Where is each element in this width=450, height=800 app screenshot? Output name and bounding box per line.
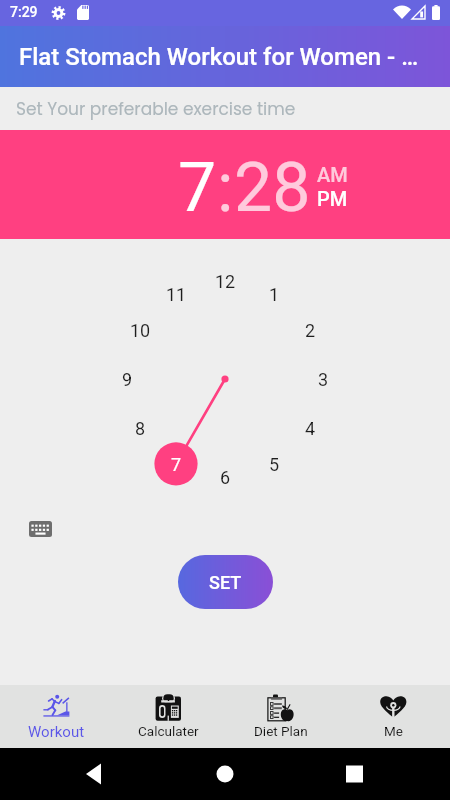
- staticText: 8: [135, 418, 146, 439]
- staticText: 3: [318, 369, 329, 390]
- staticText: SET: [209, 572, 242, 593]
- staticText: Set Your preferable exercise time: [16, 97, 296, 121]
- staticText: 10: [130, 320, 151, 341]
- staticText: 9: [122, 369, 133, 390]
- button[interactable]: 9: [107, 359, 147, 399]
- staticText: Me: [384, 723, 403, 739]
- button[interactable]: 7: [178, 148, 217, 228]
- staticText: Calculater: [138, 723, 199, 739]
- staticText: 1: [269, 284, 280, 305]
- staticText: 4: [305, 418, 316, 439]
- button[interactable]: SET: [178, 555, 273, 609]
- staticText: 5: [269, 454, 280, 475]
- staticText: 6: [220, 467, 231, 488]
- button[interactable]: 4: [290, 408, 330, 448]
- button[interactable]: 1: [254, 274, 294, 314]
- button[interactable]: 8: [120, 408, 160, 448]
- staticText: Diet Plan: [254, 723, 308, 739]
- button[interactable]: Workout: [0, 685, 112, 748]
- staticText: 7:29: [10, 4, 38, 20]
- button[interactable]: 6: [205, 457, 245, 497]
- button[interactable]: 5: [254, 444, 294, 484]
- button[interactable]: PM: [317, 187, 348, 210]
- staticText: 7: [171, 454, 182, 475]
- button[interactable]: 2: [290, 310, 330, 350]
- staticText: :: [217, 148, 234, 228]
- staticText: 12: [215, 271, 236, 292]
- button[interactable]: Me: [337, 685, 450, 748]
- button[interactable]: 28: [234, 148, 311, 228]
- button[interactable]: Switch to keyboard input: [22, 511, 58, 547]
- staticText: 2: [305, 320, 316, 341]
- staticText: Flat Stomach Workout for Women - Burn Be…: [19, 43, 433, 71]
- button[interactable]: 10: [120, 310, 160, 350]
- button[interactable]: 12: [205, 261, 245, 301]
- button[interactable]: Calculater: [112, 685, 224, 748]
- button[interactable]: 7: [156, 444, 196, 484]
- staticText: 11: [166, 284, 187, 305]
- button[interactable]: Diet Plan: [224, 685, 337, 748]
- button[interactable]: AM: [317, 163, 348, 186]
- button[interactable]: 3: [303, 359, 343, 399]
- button[interactable]: 11: [156, 274, 196, 314]
- staticText: Workout: [28, 723, 85, 741]
